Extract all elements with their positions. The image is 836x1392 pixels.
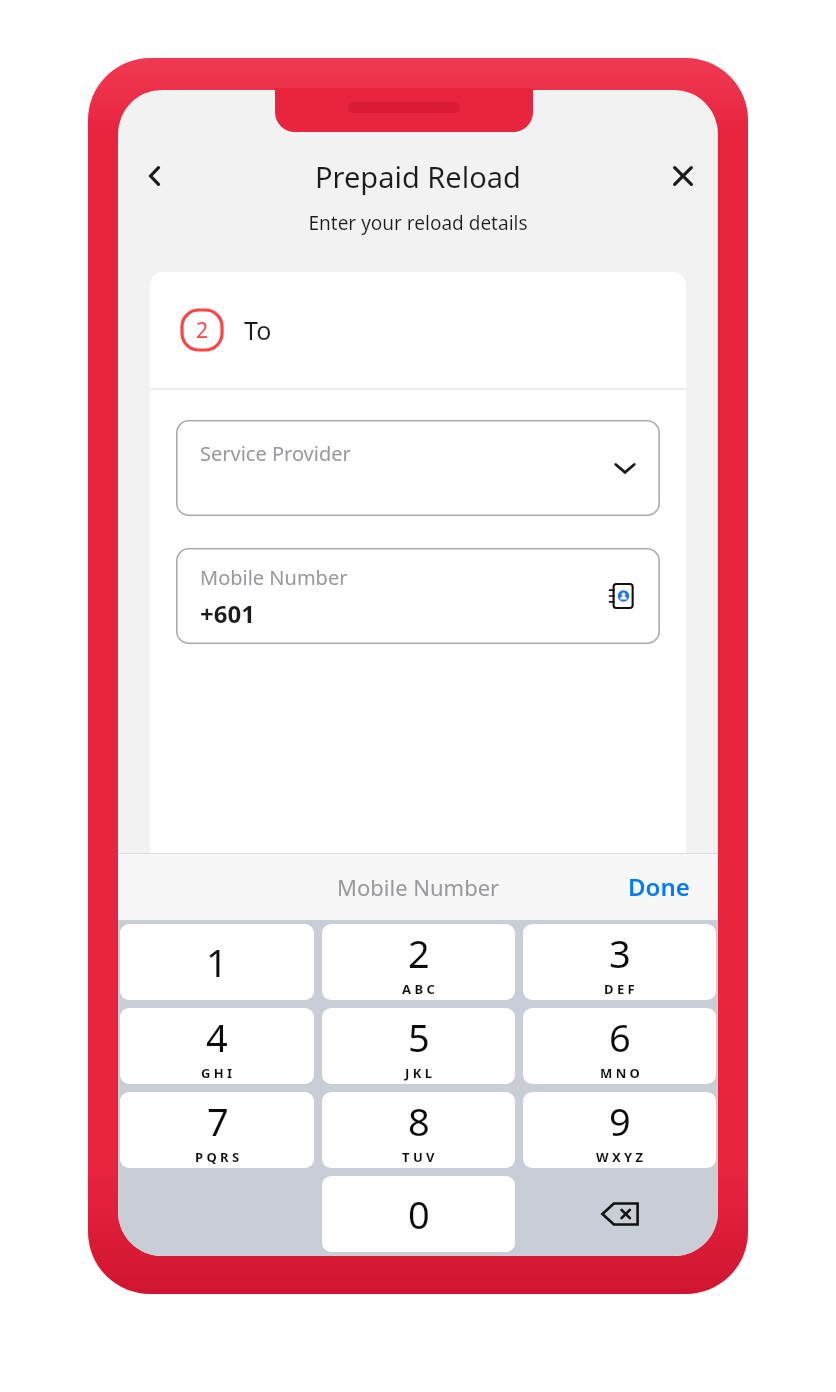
button[interactable]: 1 bbox=[120, 924, 314, 1000]
button[interactable]: Mobile Number bbox=[176, 548, 660, 644]
staticText: G H I bbox=[201, 1064, 233, 1082]
staticText: M N O bbox=[600, 1064, 640, 1082]
button[interactable]: 9 bbox=[523, 1092, 716, 1168]
button[interactable]: 0 bbox=[322, 1176, 515, 1252]
staticText: Prepaid Reload bbox=[315, 157, 521, 196]
staticText: D E F bbox=[604, 980, 635, 998]
staticText: 3 bbox=[609, 927, 631, 979]
button[interactable]: 5 bbox=[322, 1008, 515, 1084]
button[interactable]: Service Provider bbox=[176, 420, 660, 516]
button[interactable]: 7 bbox=[120, 1092, 314, 1168]
staticText: +601 bbox=[200, 597, 255, 630]
button[interactable]: 4 bbox=[120, 1008, 314, 1084]
button[interactable]: 8 bbox=[322, 1092, 515, 1168]
staticText: 0 bbox=[408, 1188, 430, 1240]
staticText: 9 bbox=[609, 1095, 631, 1147]
staticText: 6 bbox=[609, 1011, 631, 1063]
staticText: Service Provider bbox=[200, 440, 351, 467]
button[interactable]: Back bbox=[132, 153, 178, 199]
button[interactable]: 2 bbox=[322, 924, 515, 1000]
staticText: Mobile Number bbox=[200, 564, 348, 591]
staticText: 1 bbox=[206, 936, 228, 988]
staticText: W X Y Z bbox=[596, 1148, 644, 1166]
button[interactable]: Done bbox=[620, 864, 698, 909]
staticText: 4 bbox=[206, 1011, 228, 1063]
button[interactable]: Close bbox=[660, 153, 706, 199]
staticText: 7 bbox=[207, 1095, 229, 1147]
staticText: Enter your reload details bbox=[118, 210, 718, 236]
staticText: 2 bbox=[196, 316, 209, 345]
staticText: J K L bbox=[405, 1064, 432, 1082]
button[interactable]: Pick contact bbox=[606, 580, 638, 612]
staticText: P Q R S bbox=[195, 1148, 240, 1166]
staticText: To bbox=[244, 313, 272, 347]
button[interactable]: 3 bbox=[523, 924, 716, 1000]
button[interactable]: 6 bbox=[523, 1008, 716, 1084]
staticText: Done bbox=[628, 870, 690, 903]
staticText: Mobile Number bbox=[337, 872, 500, 902]
button[interactable]: Backspace bbox=[523, 1176, 716, 1252]
staticText: 8 bbox=[408, 1095, 430, 1147]
staticText: 2 bbox=[408, 927, 430, 979]
staticText: 5 bbox=[408, 1011, 430, 1063]
staticText: A B C bbox=[402, 980, 435, 998]
staticText: T U V bbox=[402, 1148, 435, 1166]
